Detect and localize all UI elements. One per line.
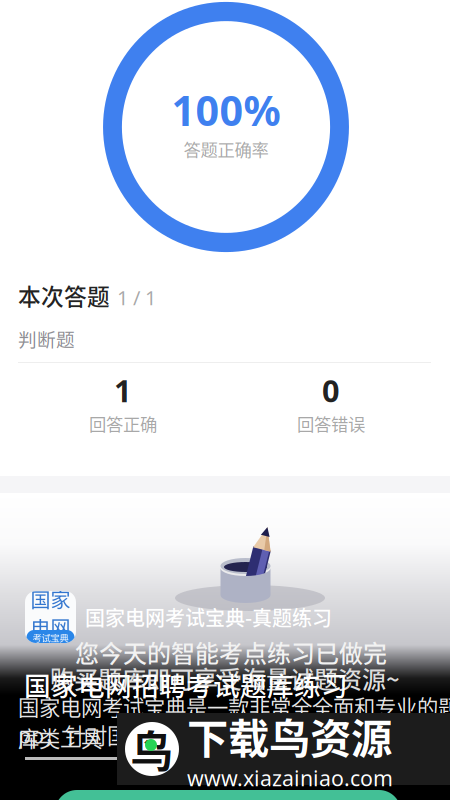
staticText: 国家电网考试宝典是一款非常全全面和专业的题库类工具 bbox=[18, 691, 450, 753]
button[interactable] bbox=[55, 790, 401, 800]
staticText: 1 / 1 bbox=[117, 284, 156, 311]
staticText: 本次答题 bbox=[18, 279, 110, 312]
staticText: 0 bbox=[322, 370, 340, 411]
staticText: 答题正确率 bbox=[183, 136, 268, 161]
staticText: www.xiazainiao.com bbox=[187, 764, 393, 792]
staticText: 考试宝典 bbox=[32, 631, 68, 644]
staticText: 购买题库即可享受海量试题资源~ bbox=[50, 661, 400, 695]
staticText: 电网 bbox=[30, 612, 70, 641]
staticText: 国家电网考试宝典-真题练习 bbox=[85, 602, 332, 631]
staticText: 判断题 bbox=[18, 325, 75, 352]
button[interactable]: 国家 bbox=[25, 591, 335, 643]
staticText: 国家电网招聘考试题库练习 bbox=[24, 665, 348, 704]
staticText: 国家 bbox=[30, 584, 70, 613]
staticText: 回答正确 bbox=[89, 411, 157, 436]
staticText: 1 bbox=[114, 370, 132, 411]
staticText: 您今天的智能考点练习已做完 bbox=[75, 635, 387, 669]
staticText: 下载鸟资源 bbox=[187, 706, 392, 766]
staticText: 100% bbox=[171, 82, 280, 137]
staticText: 回答错误 bbox=[297, 411, 365, 436]
staticText: 鸟 bbox=[130, 718, 173, 780]
staticText: pp，针对国家电网考试 bbox=[18, 719, 233, 750]
